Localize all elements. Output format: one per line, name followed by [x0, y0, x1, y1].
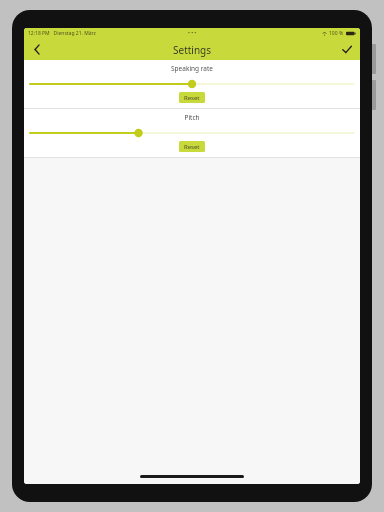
staticText: Speaking rate	[24, 64, 360, 73]
button[interactable]: Pitch slider	[30, 127, 354, 139]
button[interactable]: Reset	[179, 92, 205, 103]
staticText: 12:18 PM Dienstag 21. März	[28, 30, 96, 37]
button[interactable]: Back	[24, 39, 50, 60]
button[interactable]: Reset	[179, 141, 205, 152]
staticText: Pitch	[24, 113, 360, 122]
staticText: 100 %	[329, 30, 344, 37]
staticText: Reset	[184, 94, 200, 102]
staticText: Reset	[184, 143, 200, 151]
staticText: Settings	[173, 43, 212, 57]
staticText: • • •	[188, 30, 197, 37]
button[interactable]: Speaking rate slider	[30, 78, 354, 90]
button[interactable]: Done	[334, 39, 360, 60]
